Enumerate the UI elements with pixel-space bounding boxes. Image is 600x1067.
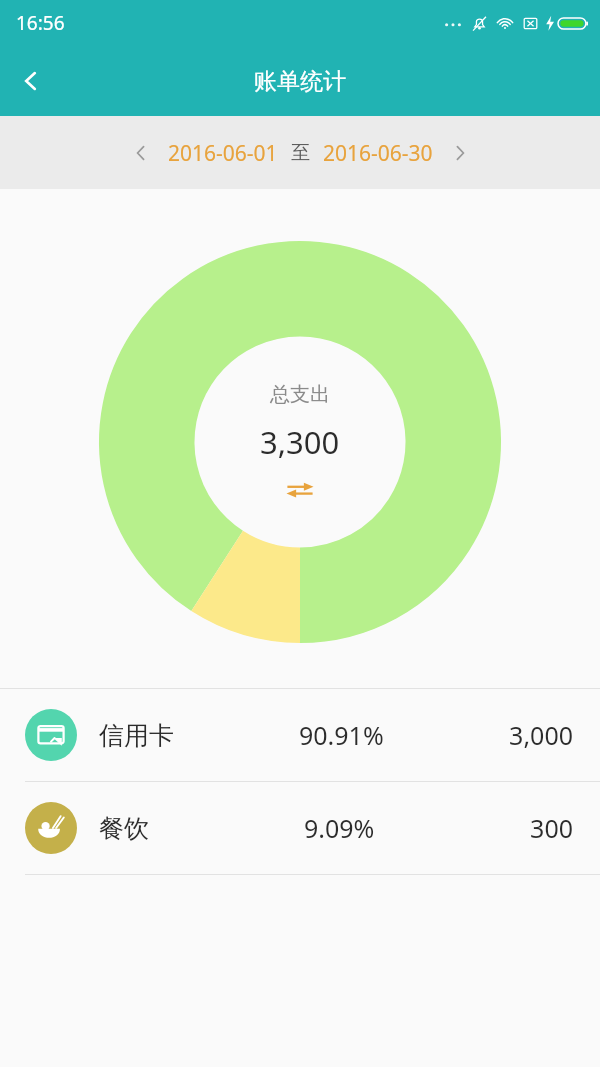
- button[interactable]: 2016-06-01: [166, 139, 280, 168]
- staticText: 300: [530, 811, 573, 845]
- button[interactable]: Next period: [437, 130, 483, 176]
- staticText: 16:56: [16, 10, 65, 36]
- button[interactable]: 信用卡: [0, 689, 600, 781]
- staticText: 信用卡: [99, 720, 174, 751]
- button[interactable]: 2016-06-30: [321, 139, 435, 168]
- button[interactable]: 餐饮: [0, 782, 600, 874]
- staticText: 2016-06-01: [168, 139, 278, 168]
- staticText: 3,300: [260, 421, 340, 463]
- staticText: 9.09%: [304, 811, 375, 845]
- staticText: 餐饮: [99, 813, 149, 844]
- staticText: 账单统计: [254, 67, 346, 96]
- staticText: 总支出: [270, 382, 330, 407]
- button[interactable]: Back: [0, 50, 62, 112]
- staticText: 至: [291, 141, 310, 165]
- staticText: 2016-06-30: [323, 139, 433, 168]
- staticText: 90.91%: [299, 718, 384, 752]
- button[interactable]: Previous period: [118, 130, 164, 176]
- staticText: 3,000: [509, 718, 573, 752]
- button[interactable]: Switch income and expense: [280, 477, 320, 503]
